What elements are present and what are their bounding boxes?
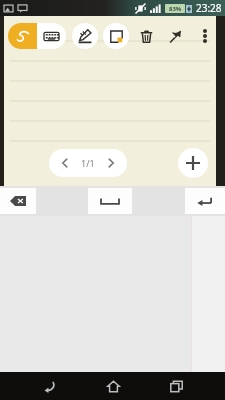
staticText: 83% xyxy=(169,5,182,13)
button[interactable]: Back xyxy=(35,372,63,400)
button[interactable]: Handwriting mode xyxy=(8,23,37,49)
button[interactable]: Pin xyxy=(165,25,187,47)
staticText: 1/1 xyxy=(81,157,95,169)
button[interactable]: Page navigation xyxy=(49,149,127,177)
button[interactable]: Backspace xyxy=(0,188,36,214)
button[interactable]: Pen style xyxy=(72,23,98,49)
button[interactable]: More options xyxy=(195,25,214,47)
button[interactable]: Space xyxy=(88,188,132,214)
button[interactable]: Recent apps xyxy=(162,372,190,400)
button[interactable]: Insert shape xyxy=(103,23,129,49)
button[interactable]: Delete xyxy=(135,25,157,47)
button[interactable]: Home xyxy=(99,372,127,400)
staticText: 23:28 xyxy=(196,1,222,15)
button[interactable]: Enter xyxy=(185,188,225,214)
button[interactable]: Add page xyxy=(178,148,208,178)
button[interactable]: Keyboard mode xyxy=(37,23,66,49)
